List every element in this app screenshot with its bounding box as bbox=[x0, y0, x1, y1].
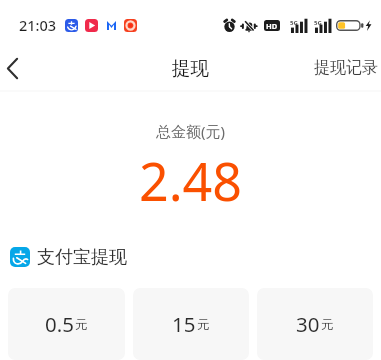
staticText: 元 bbox=[321, 317, 334, 333]
staticText: 元 bbox=[75, 317, 88, 333]
staticText: 元 bbox=[197, 317, 210, 333]
staticText: 2.48 bbox=[0, 145, 381, 216]
staticText: 总金额(元) bbox=[0, 121, 381, 141]
staticText: 30 bbox=[296, 310, 320, 338]
button[interactable]: 提现记录 bbox=[314, 58, 378, 78]
staticText: 21:03 bbox=[19, 15, 57, 35]
staticText: HD bbox=[266, 21, 278, 31]
button[interactable]: Back bbox=[0, 48, 24, 88]
staticText: 提现记录 bbox=[314, 58, 378, 78]
staticText: 支付宝提现 bbox=[37, 246, 127, 269]
button[interactable]: 0.5 bbox=[8, 288, 125, 360]
staticText: 5G bbox=[290, 19, 298, 27]
staticText: 提现 bbox=[172, 57, 209, 80]
staticText: 15 bbox=[172, 310, 196, 338]
button[interactable]: 30 bbox=[257, 288, 373, 360]
staticText: 5G bbox=[314, 19, 322, 27]
button[interactable]: 15 bbox=[133, 288, 249, 360]
staticText: 0.5 bbox=[45, 310, 74, 338]
